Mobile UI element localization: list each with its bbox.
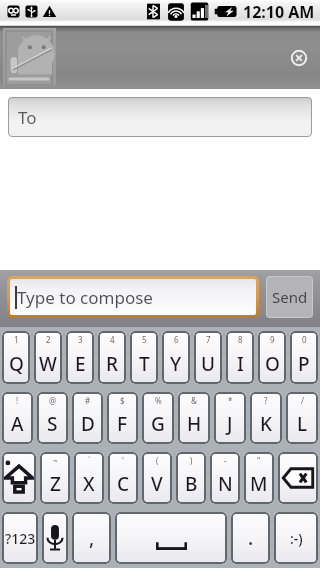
button[interactable]: 7 [194, 331, 222, 384]
staticText: * [228, 395, 233, 406]
staticText: ' [122, 455, 124, 466]
button[interactable]: 2 [34, 331, 62, 384]
staticText: 2 [46, 334, 51, 345]
staticText: O [265, 351, 280, 377]
button[interactable]: Shift [2, 452, 36, 504]
button[interactable]: :-) [274, 512, 318, 564]
staticText: W [39, 351, 57, 377]
staticText: Y [170, 351, 182, 377]
staticText: Q [9, 351, 24, 377]
button[interactable]: 0 [290, 331, 318, 384]
button[interactable]: ` [74, 452, 104, 504]
staticText: 3 [78, 334, 83, 345]
staticText: M [250, 471, 268, 497]
staticText: A [11, 411, 24, 437]
staticText: 8 [238, 334, 243, 345]
staticText: Type to compose [17, 286, 153, 309]
button[interactable]: Voice input [42, 512, 68, 564]
staticText: ?123 [5, 529, 36, 548]
staticText: ~ [53, 455, 58, 466]
button[interactable]: , [72, 512, 111, 564]
staticText: K [260, 411, 273, 437]
staticText: @ [49, 395, 57, 406]
button[interactable]: Type to compose [10, 279, 256, 315]
button[interactable]: ' [108, 452, 138, 504]
staticText: & [191, 395, 197, 406]
staticText: E [75, 351, 86, 377]
button[interactable]: 9 [258, 331, 286, 384]
staticText: ? [264, 395, 268, 406]
button[interactable]: 5 [130, 331, 158, 384]
staticText: $ [120, 395, 125, 406]
staticText: J [227, 411, 233, 437]
staticText: C [117, 471, 130, 497]
staticText: V [151, 471, 163, 497]
staticText: H [187, 411, 202, 437]
staticText: ! [16, 395, 19, 406]
button[interactable]: . [231, 512, 270, 564]
button[interactable]: # [72, 392, 103, 444]
staticText: T [139, 351, 150, 377]
staticText: # [85, 395, 91, 406]
staticText: 7 [206, 334, 211, 345]
staticText: . [248, 525, 254, 551]
staticText: - [224, 455, 227, 466]
button[interactable]: Space [115, 512, 227, 564]
staticText: % [155, 395, 162, 406]
staticText: F [117, 411, 128, 437]
staticText: / [301, 395, 304, 406]
staticText: P [298, 351, 310, 377]
staticText: I [237, 351, 244, 377]
button[interactable]: Remove recipient [286, 45, 312, 71]
button[interactable]: - [210, 452, 240, 504]
staticText: ( [156, 455, 159, 466]
button[interactable]: Delete [278, 452, 318, 504]
button[interactable]: ) [176, 452, 206, 504]
button[interactable]: 4 [98, 331, 126, 384]
button[interactable]: ! [2, 392, 33, 444]
button[interactable]: % [142, 392, 174, 444]
staticText: " [257, 455, 261, 466]
staticText: 5 [142, 334, 147, 345]
button[interactable]: 3 [66, 331, 94, 384]
button[interactable]: ? [250, 392, 282, 444]
staticText: L [297, 411, 308, 437]
button[interactable]: & [178, 392, 210, 444]
button[interactable]: 8 [226, 331, 254, 384]
button[interactable]: Send [266, 276, 313, 318]
staticText: 4 [110, 334, 115, 345]
staticText: B [185, 471, 198, 497]
staticText: Send [272, 287, 308, 307]
staticText: 1 [14, 334, 19, 345]
staticText: 9 [270, 334, 275, 345]
button[interactable]: 1 [2, 331, 30, 384]
button[interactable] [3, 28, 56, 86]
staticText: 12:10 AM [243, 1, 315, 23]
staticText: D [81, 411, 95, 437]
button[interactable]: ~ [40, 452, 70, 504]
button[interactable]: ( [142, 452, 172, 504]
staticText: 0 [302, 334, 307, 345]
staticText: , [89, 525, 95, 551]
button[interactable]: / [286, 392, 318, 444]
staticText: :-) [290, 529, 303, 548]
button[interactable]: 6 [162, 331, 190, 384]
staticText: To [18, 106, 37, 129]
button[interactable]: $ [107, 392, 138, 444]
button[interactable]: @ [37, 392, 68, 444]
staticText: 6 [174, 334, 179, 345]
staticText: N [218, 471, 233, 497]
button[interactable]: * [214, 392, 246, 444]
staticText: R [106, 351, 119, 377]
staticText: ` [88, 455, 91, 466]
button[interactable]: ?123 [2, 512, 38, 564]
staticText: Z [50, 471, 61, 497]
staticText: G [151, 411, 165, 437]
button[interactable]: " [244, 452, 274, 504]
staticText: U [201, 351, 216, 377]
staticText: S [47, 411, 58, 437]
button[interactable]: To [8, 97, 312, 137]
staticText: X [83, 471, 95, 497]
staticText: ) [190, 455, 193, 466]
